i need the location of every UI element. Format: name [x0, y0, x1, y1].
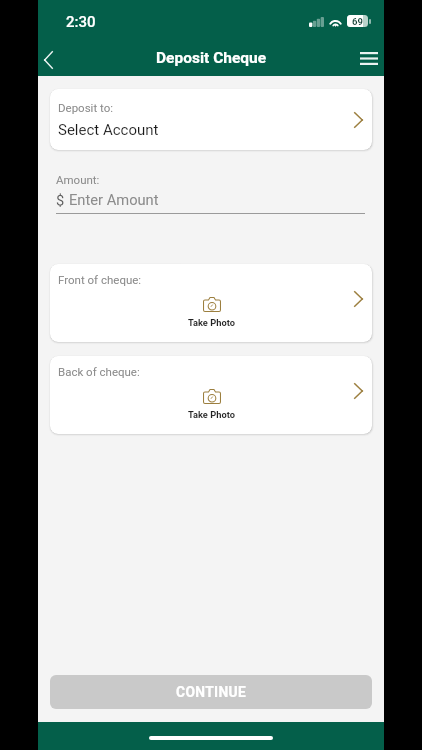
staticText: Deposit to: — [58, 101, 114, 114]
button[interactable]: Back of cheque: — [50, 356, 372, 434]
button[interactable]: Menu — [350, 40, 384, 76]
staticText: 2:30 — [66, 13, 96, 31]
button[interactable]: Deposit to: — [50, 89, 372, 150]
button[interactable]: Take Photo — [188, 389, 235, 420]
staticText: 69 — [352, 16, 363, 27]
button[interactable]: CONTINUE — [50, 675, 372, 709]
button[interactable]: Take Photo — [188, 297, 235, 328]
staticText: Take Photo — [188, 317, 235, 328]
staticText: Select Account — [58, 121, 159, 139]
staticText: Front of cheque: — [58, 273, 142, 286]
button[interactable]: Back — [38, 40, 72, 76]
staticText: $ — [56, 191, 65, 208]
staticText: Back of cheque: — [58, 365, 140, 378]
staticText: Amount: — [56, 173, 100, 186]
staticText: Enter Amount — [69, 191, 159, 208]
staticText: Deposit Cheque — [156, 49, 267, 67]
button[interactable]: Front of cheque: — [50, 264, 372, 342]
staticText: CONTINUE — [176, 684, 247, 700]
staticText: Take Photo — [188, 409, 235, 420]
